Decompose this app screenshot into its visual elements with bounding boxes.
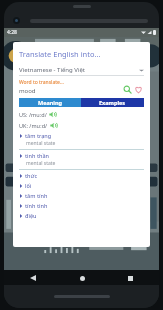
button[interactable]: Home bbox=[75, 271, 89, 285]
button[interactable]: Meaning bbox=[19, 98, 81, 107]
staticText: 4:28 bbox=[7, 29, 17, 36]
staticText: Word to translate... bbox=[19, 79, 64, 86]
staticText: US: /muːd/ bbox=[19, 111, 47, 118]
button[interactable]: Vietnamese - Tiếng Việt bbox=[19, 66, 144, 74]
button[interactable]: Back bbox=[26, 271, 40, 285]
staticText: mental state bbox=[26, 140, 56, 147]
staticText: lối bbox=[25, 182, 32, 189]
button[interactable]: thức bbox=[19, 172, 144, 182]
button[interactable]: tâm trạng bbox=[19, 132, 144, 152]
staticText: tâm trạng bbox=[25, 132, 52, 139]
button[interactable]: Recents bbox=[123, 271, 137, 285]
button[interactable]: US: /muːd/ bbox=[19, 111, 56, 118]
button[interactable]: Examples bbox=[81, 98, 144, 107]
button[interactable]: Favorite bbox=[133, 84, 144, 95]
staticText: tinh thần bbox=[25, 152, 50, 159]
button[interactable]: điệu bbox=[19, 212, 144, 222]
staticText: mood bbox=[19, 87, 36, 95]
staticText: Translate English into... bbox=[19, 49, 101, 59]
staticText: thức bbox=[25, 172, 38, 179]
staticText: điệu bbox=[25, 212, 37, 219]
staticText: UK: /muːd/ bbox=[19, 122, 48, 129]
staticText: Vietnamese - Tiếng Việt bbox=[19, 66, 139, 74]
button[interactable]: Search bbox=[122, 84, 133, 95]
staticText: mental state bbox=[26, 160, 56, 167]
staticText: tính tình bbox=[25, 202, 48, 209]
button[interactable]: tâm tính bbox=[19, 192, 144, 202]
staticText: Examples bbox=[99, 99, 126, 106]
button[interactable]: lối bbox=[19, 182, 144, 192]
staticText: tâm tính bbox=[25, 192, 48, 199]
button[interactable]: tinh thần bbox=[19, 152, 144, 172]
staticText: Meaning bbox=[38, 99, 63, 106]
button[interactable]: UK: /muːd/ bbox=[19, 122, 57, 129]
button[interactable]: tính tình bbox=[19, 202, 144, 212]
